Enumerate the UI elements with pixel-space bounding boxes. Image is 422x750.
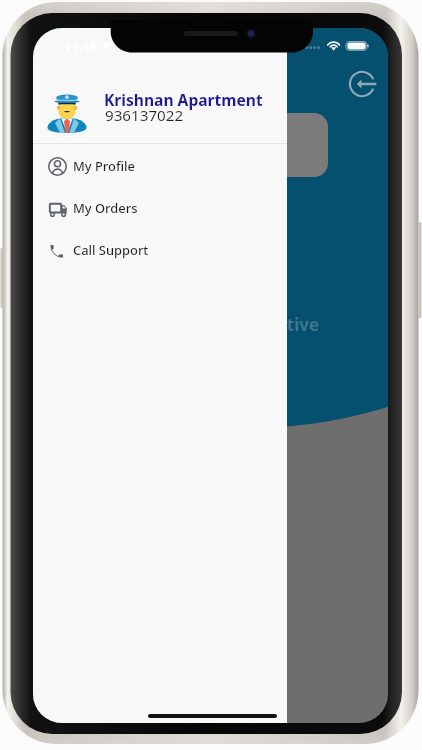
button[interactable]: Service Active bbox=[201, 313, 320, 336]
staticText: Krishnan Apartment bbox=[104, 89, 263, 110]
button[interactable]: Logout bbox=[346, 68, 378, 100]
button[interactable]: My Orders bbox=[33, 187, 287, 229]
button[interactable]: Call Support bbox=[33, 229, 287, 271]
staticText: My Orders bbox=[73, 199, 138, 217]
button[interactable]: My Profile bbox=[33, 145, 287, 187]
staticText: Call Support bbox=[73, 241, 149, 259]
staticText: Service Active bbox=[201, 313, 320, 336]
staticText: 936137022 bbox=[105, 105, 184, 126]
staticText: My Profile bbox=[73, 157, 135, 175]
